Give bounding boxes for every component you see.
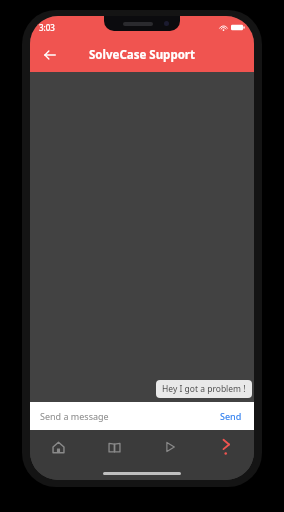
staticText: 3:03 — [39, 22, 55, 33]
staticText: Hey I got a problem ! — [162, 383, 246, 395]
button[interactable]: Library — [86, 430, 142, 464]
button[interactable]: Send — [218, 408, 244, 424]
button[interactable]: Back — [36, 41, 64, 69]
button[interactable]: Home — [30, 430, 86, 464]
staticText: Send a message — [40, 410, 109, 422]
button[interactable]: Send a message — [40, 410, 218, 422]
button[interactable]: Play — [142, 430, 198, 464]
button[interactable]: Hey I got a problem ! — [156, 380, 252, 398]
staticText: SolveCase Support — [89, 47, 195, 63]
staticText: Send — [220, 410, 242, 422]
button[interactable]: Messages — [198, 430, 254, 464]
